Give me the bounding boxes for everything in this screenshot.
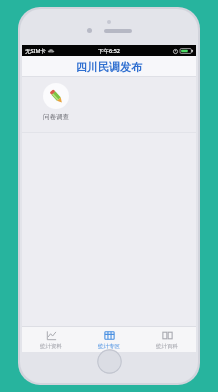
staticText: 下午6:52 xyxy=(98,47,120,55)
button[interactable]: 统计资料 xyxy=(22,327,80,352)
staticText: 统计资料 xyxy=(40,343,62,350)
staticText: 统计百科 xyxy=(156,343,178,350)
button[interactable]: Home xyxy=(97,349,122,374)
button[interactable]: 统计百科 xyxy=(138,327,196,352)
staticText: 问卷调查 xyxy=(43,113,69,121)
staticText: 无SIM卡 xyxy=(25,47,46,55)
staticText: 统计专区 xyxy=(98,343,120,350)
button[interactable]: 统计专区 xyxy=(80,327,138,352)
staticText: 四川民调发布 xyxy=(76,60,142,74)
button[interactable]: 问卷调查 xyxy=(34,83,78,121)
